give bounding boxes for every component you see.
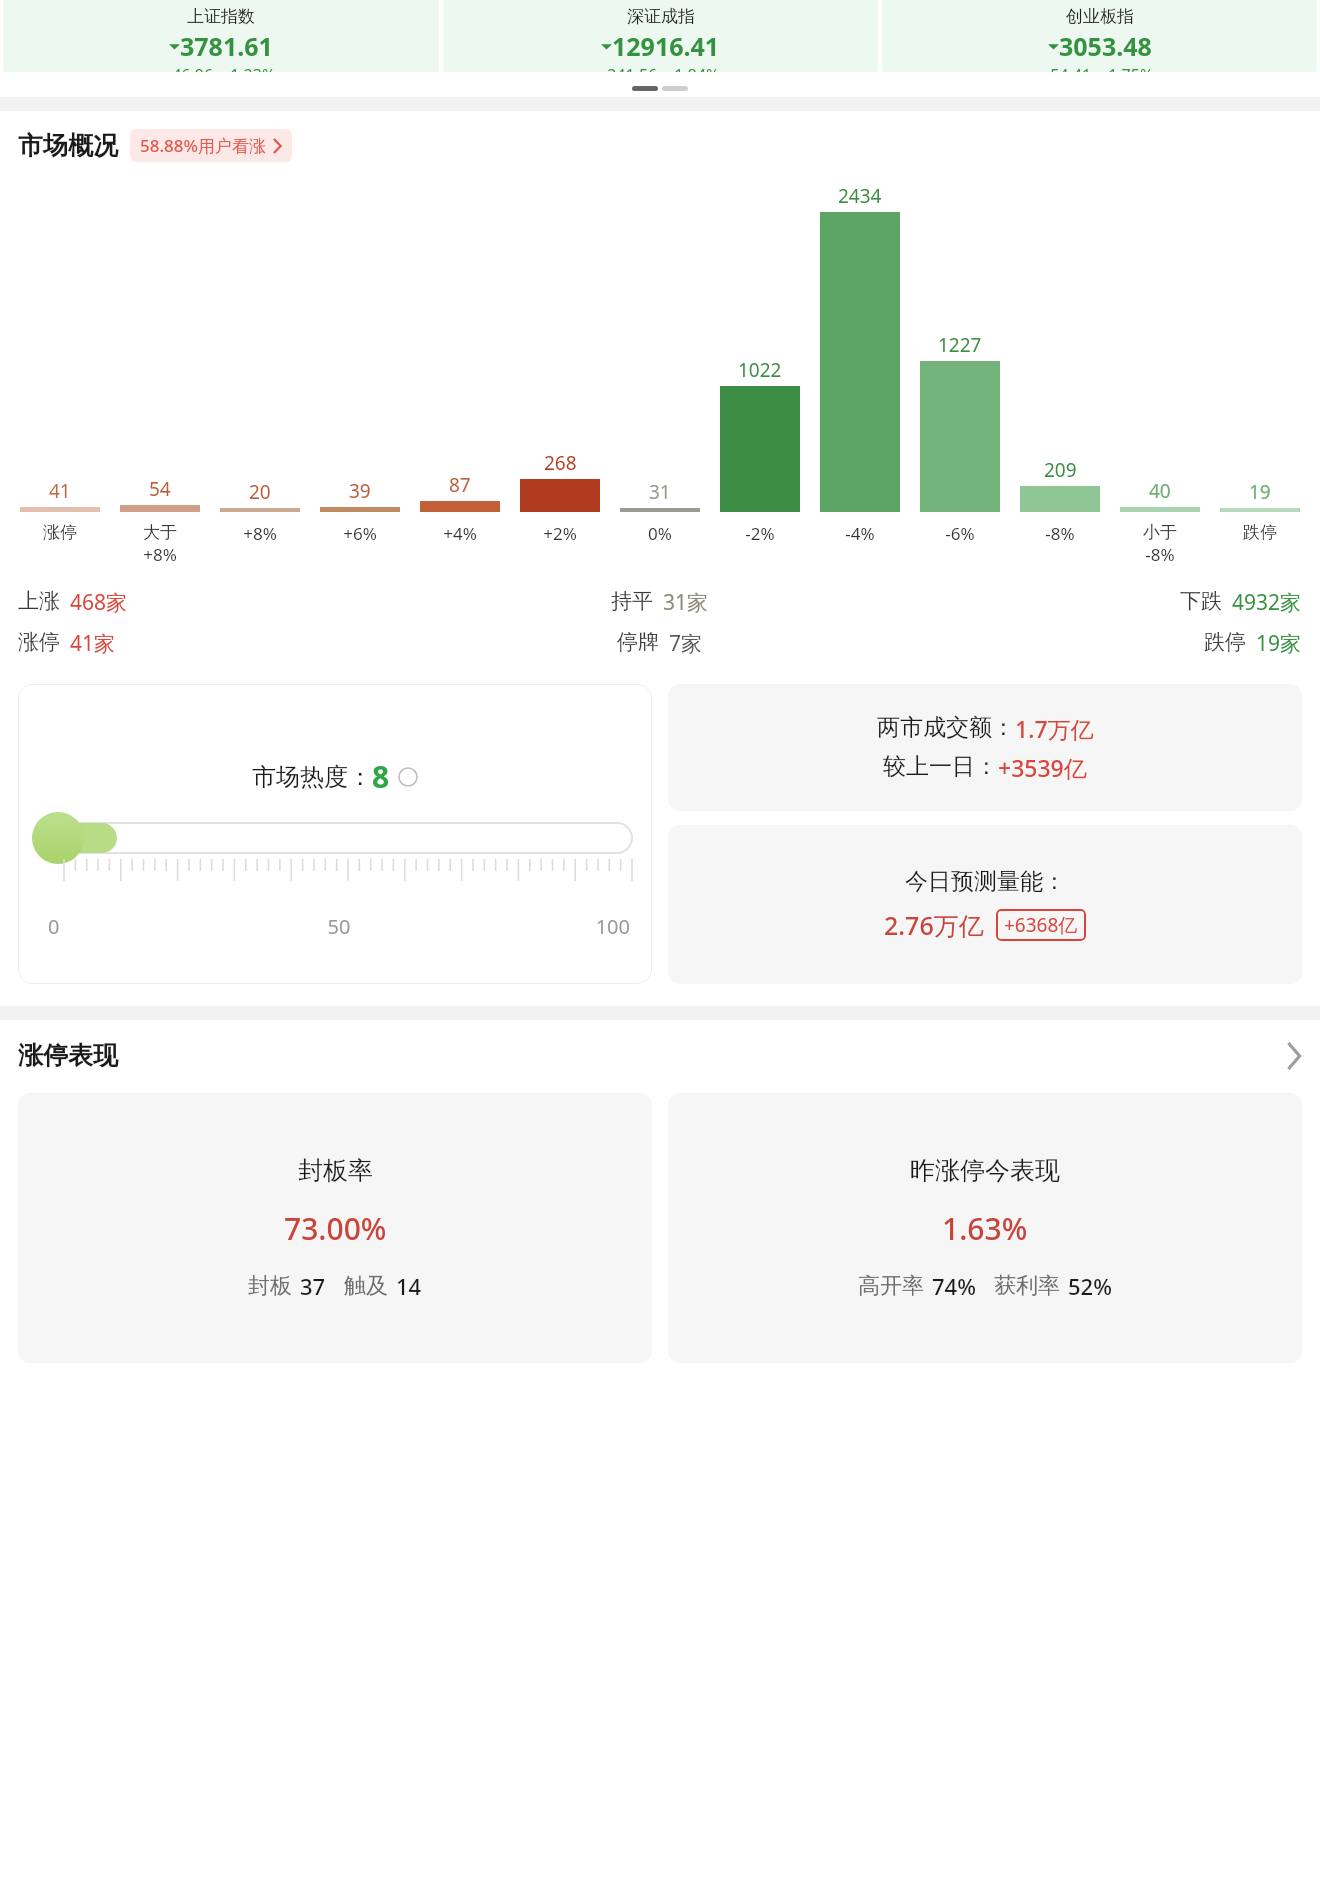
staticText: 52% xyxy=(1068,1271,1112,1301)
staticText: 19家 xyxy=(1256,629,1302,658)
staticText: -1.84% xyxy=(669,64,720,72)
staticText: 20 xyxy=(249,479,271,505)
staticText: 上涨 xyxy=(18,588,60,614)
staticText: 2434 xyxy=(838,183,882,209)
button[interactable]: 58.88%用户看涨 xyxy=(130,129,292,162)
staticText: 1022 xyxy=(738,357,782,383)
staticText: 下跌 xyxy=(1180,588,1222,614)
staticText: 上证指数 xyxy=(187,6,255,27)
staticText: 14 xyxy=(396,1271,422,1301)
staticText: 触及 xyxy=(344,1272,388,1300)
button[interactable]: 昨涨停今表现 xyxy=(668,1093,1302,1363)
staticText: -1.75% xyxy=(1103,64,1154,72)
button[interactable]: 市场热度： xyxy=(18,684,652,984)
button[interactable]: 深证成指 xyxy=(443,0,878,72)
staticText: 8 xyxy=(372,756,390,797)
staticText: +2% xyxy=(543,522,577,545)
button[interactable]: 涨停表现 xyxy=(0,1040,1320,1071)
staticText: -54.41 xyxy=(1045,64,1092,72)
staticText: 昨涨停今表现 xyxy=(910,1155,1060,1186)
staticText: +8% xyxy=(143,543,177,566)
staticText: 7家 xyxy=(669,629,703,658)
staticText: 50 xyxy=(242,913,436,940)
staticText: 跌停 xyxy=(1243,522,1277,543)
staticText: -8% xyxy=(1045,522,1075,545)
staticText: 涨停 xyxy=(43,522,77,543)
staticText: 高开率 xyxy=(858,1272,924,1300)
staticText: -8% xyxy=(1145,543,1175,566)
staticText: 停牌 xyxy=(617,629,659,655)
staticText: 2.76万亿 xyxy=(884,908,984,942)
staticText: 1.7万亿 xyxy=(1015,713,1094,744)
staticText: -241.56 xyxy=(602,64,658,72)
staticText: 209 xyxy=(1044,457,1077,483)
staticText: 73.00% xyxy=(284,1208,387,1249)
staticText: 100 xyxy=(436,913,630,940)
staticText: 小于 xyxy=(1143,522,1177,543)
staticText: 封板 xyxy=(248,1272,292,1300)
staticText: 54 xyxy=(149,476,171,502)
staticText: +6368亿 xyxy=(1004,912,1078,938)
staticText: 0% xyxy=(648,522,672,545)
staticText: -4% xyxy=(845,522,875,545)
staticText: 31 xyxy=(649,479,671,505)
staticText: -2% xyxy=(745,522,775,545)
staticText: 58.88%用户看涨 xyxy=(140,134,267,157)
staticText: 41 xyxy=(49,478,71,504)
button[interactable]: 今日预测量能： xyxy=(668,825,1302,984)
staticText: 12916.41 xyxy=(612,29,720,63)
staticText: 市场热度： xyxy=(252,762,372,792)
staticText: 87 xyxy=(449,472,471,498)
staticText: 41家 xyxy=(70,629,116,658)
staticText: 31家 xyxy=(663,588,709,617)
staticText: -6% xyxy=(945,522,975,545)
other: 更多 xyxy=(1286,1043,1302,1069)
staticText: 40 xyxy=(1149,478,1171,504)
staticText: 268 xyxy=(544,450,577,476)
staticText: 19 xyxy=(1249,479,1271,505)
staticText: 468家 xyxy=(70,588,128,617)
staticText: 封板率 xyxy=(298,1155,373,1186)
staticText: 37 xyxy=(300,1271,326,1301)
staticText: -1.23% xyxy=(225,64,276,72)
staticText: 3781.61 xyxy=(180,29,273,63)
staticText: 1.63% xyxy=(942,1208,1028,1249)
staticText: 两市成交额： xyxy=(877,713,1015,742)
staticText: 获利率 xyxy=(994,1272,1060,1300)
staticText: 持平 xyxy=(611,588,653,614)
staticText: 39 xyxy=(349,478,371,504)
staticText: 跌停 xyxy=(1204,629,1246,655)
staticText: 1227 xyxy=(938,332,982,358)
staticText: 今日预测量能： xyxy=(905,867,1066,896)
staticText: 创业板指 xyxy=(1066,6,1134,27)
staticText: +3539亿 xyxy=(998,752,1087,783)
staticText: +8% xyxy=(243,522,277,545)
button[interactable]: 说明 xyxy=(398,767,418,787)
staticText: 4932家 xyxy=(1232,588,1302,617)
button[interactable]: 创业板指 xyxy=(882,0,1317,72)
staticText: 大于 xyxy=(143,522,177,543)
button[interactable]: 两市成交额： xyxy=(668,684,1302,811)
staticText: 3053.48 xyxy=(1059,29,1152,63)
staticText: 市场概况 xyxy=(18,130,118,161)
staticText: -46.96 xyxy=(167,64,214,72)
button[interactable]: 封板率 xyxy=(18,1093,652,1363)
staticText: 涨停表现 xyxy=(18,1040,118,1071)
staticText: 较上一日： xyxy=(883,752,998,781)
staticText: 涨停 xyxy=(18,629,60,655)
button[interactable]: 上证指数 xyxy=(3,0,439,72)
staticText: 深证成指 xyxy=(627,6,695,27)
staticText: +6% xyxy=(343,522,377,545)
staticText: 74% xyxy=(932,1271,976,1301)
staticText: 0 xyxy=(48,913,242,940)
staticText: +4% xyxy=(443,522,477,545)
